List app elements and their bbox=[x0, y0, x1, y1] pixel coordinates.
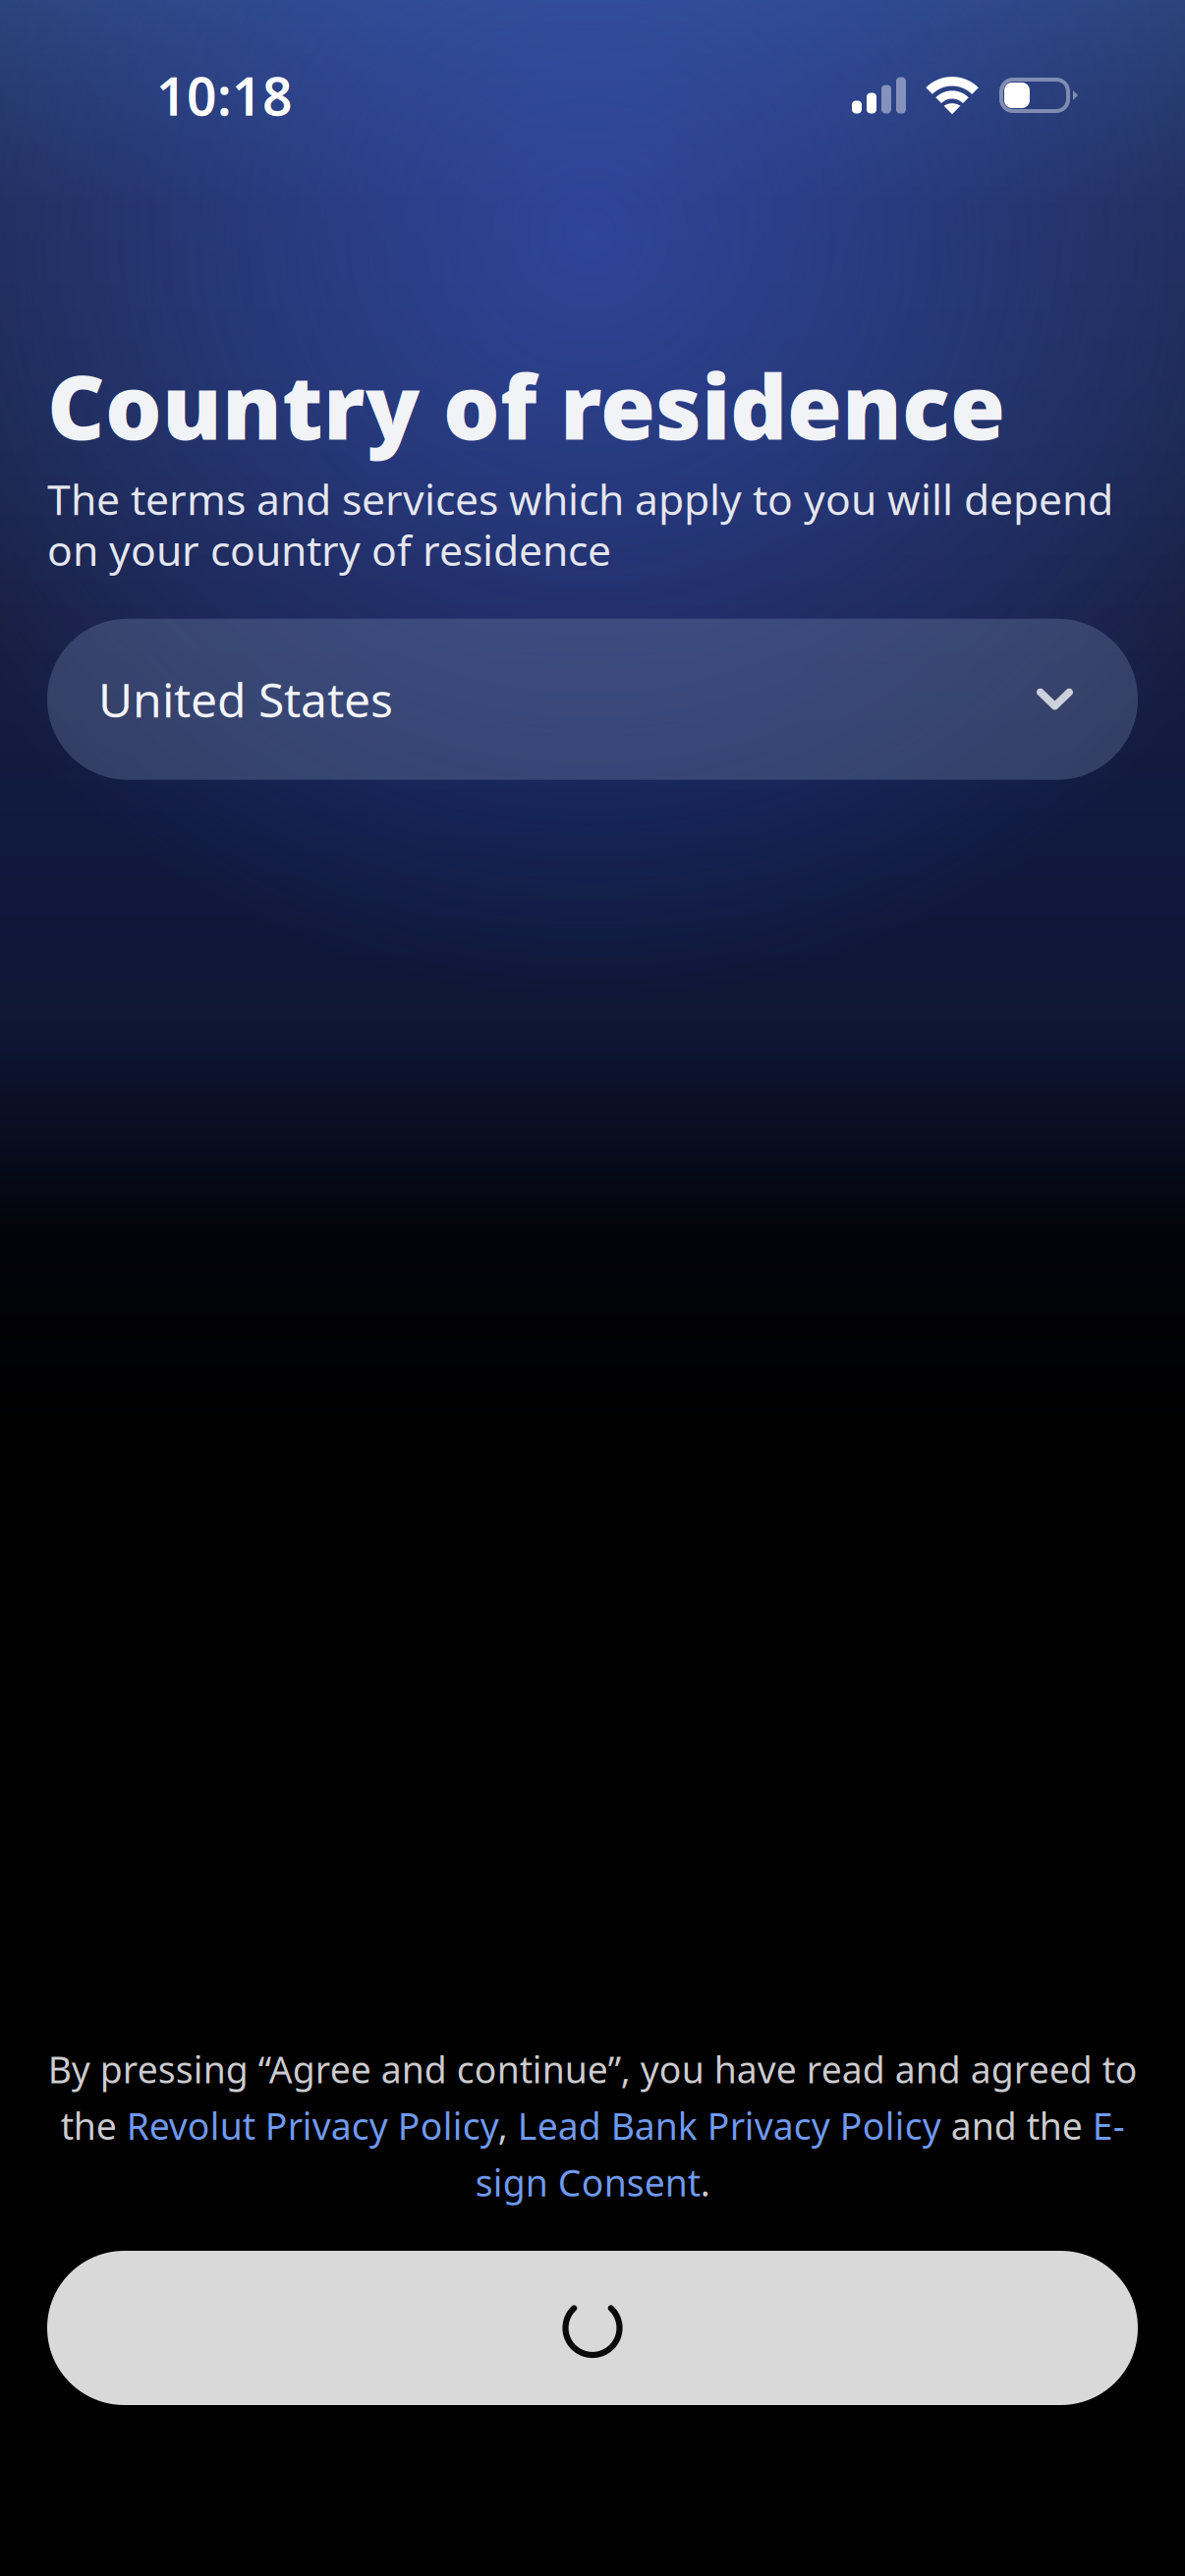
staticText: Country of residence bbox=[47, 346, 1005, 464]
staticText: By pressing “Agree and continue”, you ha… bbox=[48, 2045, 1137, 2207]
button[interactable]: United States bbox=[47, 619, 1138, 780]
staticText: United States bbox=[98, 668, 393, 731]
button[interactable]: Agree and continue bbox=[47, 2251, 1138, 2405]
staticText: The terms and services which apply to yo… bbox=[47, 471, 1113, 577]
staticText: 10:18 bbox=[156, 61, 293, 130]
